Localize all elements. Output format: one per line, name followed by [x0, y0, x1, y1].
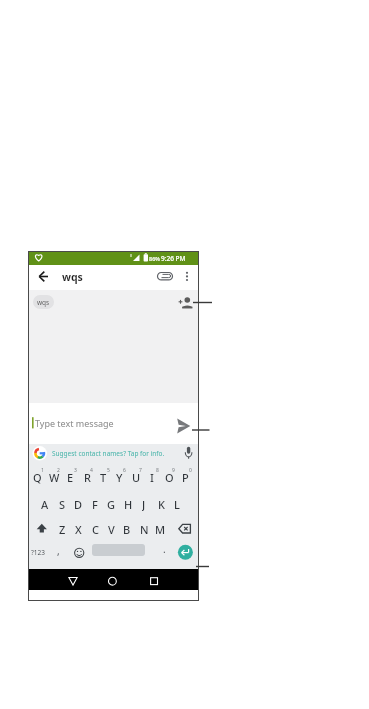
staticText: Q [33, 470, 42, 484]
staticText: W [49, 470, 60, 484]
staticText: Z [59, 522, 66, 536]
staticText: V [108, 522, 115, 536]
staticText: G [107, 497, 115, 511]
staticText: 1 [41, 467, 44, 474]
staticText: K [158, 497, 165, 511]
staticText: 7 [139, 467, 142, 474]
button[interactable] [179, 293, 195, 309]
staticText: I [150, 470, 154, 484]
staticText: 86% [149, 255, 160, 262]
staticText: O [165, 470, 174, 484]
staticText: 8 [156, 467, 159, 474]
staticText: N [140, 522, 149, 536]
staticText: Y [116, 470, 123, 484]
staticText: C [92, 522, 99, 536]
staticText: P [182, 470, 189, 484]
staticText: wqs [37, 298, 50, 307]
staticText: Suggest contact names? Tap for info. [52, 449, 165, 458]
staticText: J [142, 497, 146, 511]
button[interactable] [32, 446, 47, 461]
staticText: Type text message [35, 417, 114, 429]
staticText: D [74, 497, 83, 511]
staticText: B [123, 522, 131, 536]
staticText: 9:26 PM [161, 254, 186, 263]
staticText: 5 [107, 467, 110, 474]
staticText: . [163, 542, 166, 556]
staticText: wqs [62, 270, 83, 284]
button[interactable] [181, 267, 193, 287]
button[interactable] [36, 268, 52, 284]
staticText: R [84, 470, 91, 484]
button[interactable] [155, 267, 175, 287]
staticText: T [100, 470, 107, 484]
button[interactable] [29, 403, 169, 444]
staticText: E [67, 470, 74, 484]
button[interactable] [176, 415, 194, 433]
staticText: M [155, 522, 166, 536]
staticText: ?123 [31, 548, 45, 557]
staticText: 0 [189, 467, 192, 474]
staticText: A [41, 497, 49, 511]
staticText: S [59, 497, 66, 511]
staticText: 4 [90, 467, 93, 474]
button[interactable] [178, 545, 193, 560]
staticText: 3 [74, 467, 77, 474]
staticText: U [132, 470, 141, 484]
button[interactable]: wqs [33, 295, 54, 309]
staticText: F [92, 497, 98, 511]
staticText: H [124, 497, 133, 511]
staticText: L [174, 497, 180, 511]
staticText: 2 [57, 467, 60, 474]
staticText: 9 [172, 467, 175, 474]
button[interactable] [29, 569, 198, 590]
staticText: 6 [123, 467, 126, 474]
staticText: , [57, 544, 60, 558]
staticText: X [75, 522, 82, 536]
